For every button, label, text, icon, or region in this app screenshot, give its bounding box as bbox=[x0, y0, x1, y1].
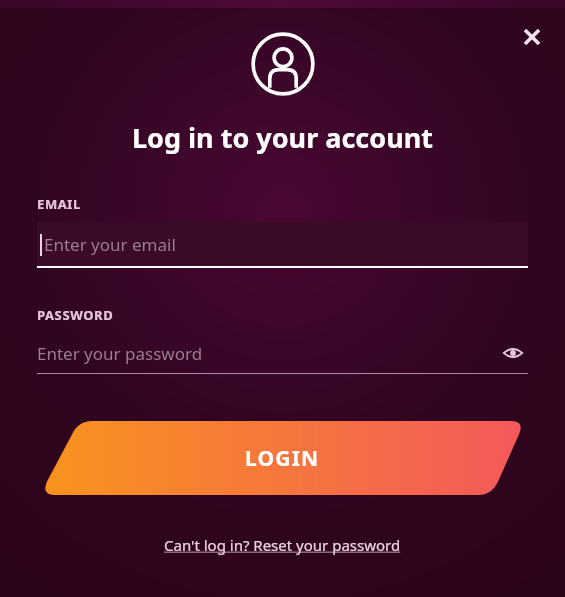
staticText: PASSWORD bbox=[37, 306, 114, 324]
staticText: Enter your email bbox=[44, 233, 176, 256]
button[interactable]: Can't log in? Reset your password bbox=[158, 531, 407, 559]
button[interactable]: Enter your email bbox=[37, 222, 528, 268]
button[interactable]: LOGIN bbox=[0, 421, 565, 495]
staticText: EMAIL bbox=[37, 195, 81, 213]
staticText: Enter your password bbox=[37, 342, 203, 365]
staticText: LOGIN bbox=[245, 444, 320, 473]
button[interactable]: Close bbox=[509, 14, 555, 60]
button[interactable]: Enter your password bbox=[37, 333, 528, 374]
staticText: Can't log in? Reset your password bbox=[164, 535, 401, 555]
button[interactable]: Show password bbox=[498, 338, 528, 368]
staticText: Log in to your account bbox=[132, 119, 433, 156]
